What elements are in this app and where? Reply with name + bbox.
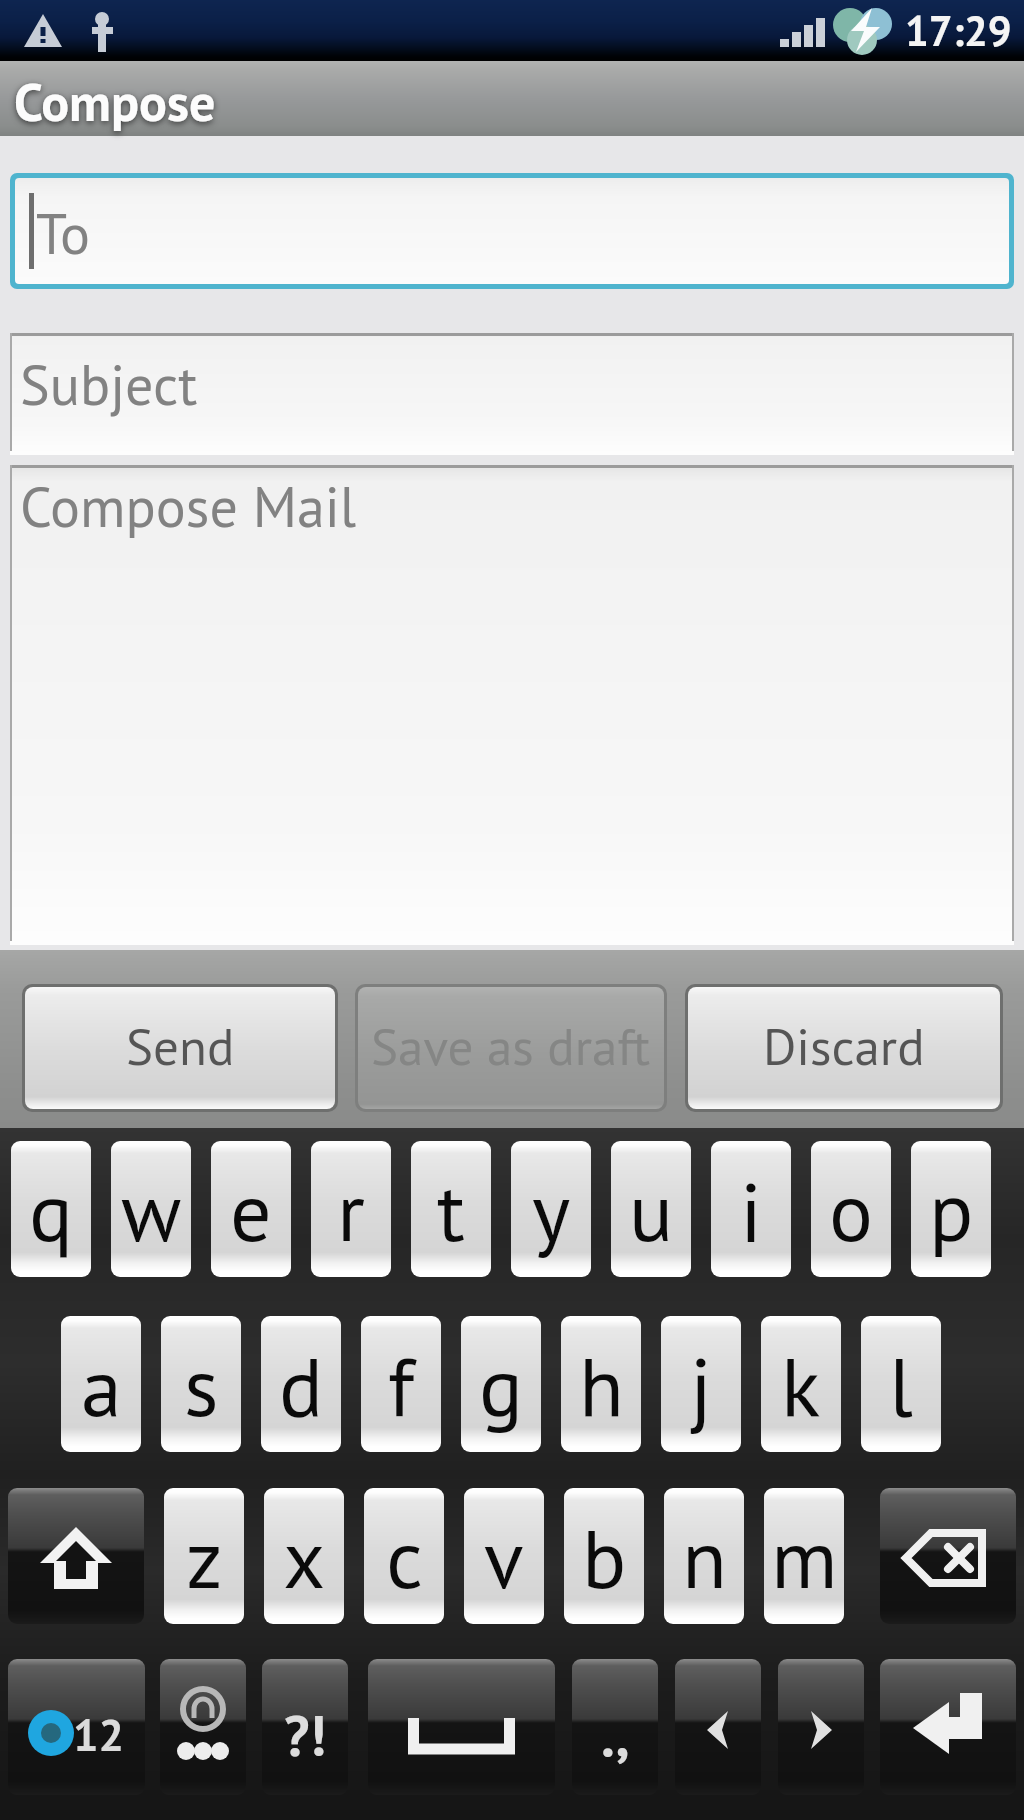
staticText: g <box>479 1333 524 1439</box>
button[interactable]: g <box>461 1316 541 1452</box>
button[interactable]: y <box>511 1141 591 1277</box>
staticText: f <box>388 1333 415 1439</box>
button[interactable]: Compose <box>0 61 1024 136</box>
button[interactable]: b <box>564 1488 644 1624</box>
staticText: Discard <box>763 1013 925 1079</box>
button[interactable]: i <box>711 1141 791 1277</box>
staticText: d <box>279 1333 324 1439</box>
staticText: Subject <box>20 348 198 420</box>
staticText: k <box>781 1333 821 1439</box>
button[interactable]: h <box>561 1316 641 1452</box>
button[interactable]: Enter <box>880 1659 1016 1795</box>
button[interactable]: Move cursor left <box>675 1659 761 1795</box>
button[interactable]: s <box>161 1316 241 1452</box>
button[interactable]: e <box>211 1141 291 1277</box>
button[interactable]: w <box>111 1141 191 1277</box>
staticText: o <box>829 1158 873 1264</box>
staticText: n <box>682 1505 727 1611</box>
staticText: u <box>629 1158 674 1264</box>
button[interactable]: Discard <box>688 987 1000 1109</box>
staticText: s <box>184 1333 219 1439</box>
button[interactable]: Change input method <box>160 1659 246 1795</box>
staticText: Compose Mail <box>20 470 357 542</box>
button[interactable]: z <box>164 1488 244 1624</box>
button[interactable]: f <box>361 1316 441 1452</box>
button[interactable]: Send <box>25 987 335 1109</box>
button[interactable]: Symbols <box>262 1659 348 1795</box>
staticText: a <box>81 1333 122 1439</box>
staticText: t <box>437 1158 465 1264</box>
staticText: ?! <box>284 1699 326 1771</box>
staticText: q <box>29 1158 74 1264</box>
staticText: Save as draft <box>371 1013 651 1079</box>
button[interactable]: n <box>664 1488 744 1624</box>
staticText: Compose <box>14 68 216 135</box>
staticText: e <box>230 1158 272 1264</box>
button[interactable]: To <box>10 173 1014 289</box>
button[interactable]: Subject <box>10 333 1014 455</box>
staticText: p <box>929 1158 974 1264</box>
staticText: To <box>36 197 90 269</box>
staticText: Send <box>126 1013 235 1079</box>
button[interactable]: p <box>911 1141 991 1277</box>
staticText: 12 <box>73 1705 125 1763</box>
button[interactable]: Period and comma <box>572 1659 658 1795</box>
button[interactable]: Save as draft <box>358 987 664 1109</box>
staticText: l <box>889 1333 913 1439</box>
staticText: i <box>740 1158 762 1264</box>
button[interactable]: d <box>261 1316 341 1452</box>
staticText: w <box>121 1158 182 1264</box>
staticText: z <box>186 1505 223 1611</box>
staticText: v <box>484 1505 524 1611</box>
button[interactable]: l <box>861 1316 941 1452</box>
staticText: ., <box>601 1699 630 1771</box>
staticText: j <box>690 1333 712 1439</box>
button[interactable]: c <box>364 1488 444 1624</box>
button[interactable]: q <box>11 1141 91 1277</box>
button[interactable]: Backspace <box>880 1488 1016 1624</box>
button[interactable]: Move cursor right <box>778 1659 864 1795</box>
button[interactable]: m <box>764 1488 844 1624</box>
button[interactable]: t <box>411 1141 491 1277</box>
button[interactable]: k <box>761 1316 841 1452</box>
button[interactable]: r <box>311 1141 391 1277</box>
button[interactable]: x <box>264 1488 344 1624</box>
button[interactable]: Space <box>368 1659 555 1795</box>
staticText: c <box>386 1505 423 1611</box>
staticText: 17:29 <box>905 3 1012 57</box>
staticText: x <box>283 1505 326 1611</box>
button[interactable]: j <box>661 1316 741 1452</box>
staticText: m <box>771 1505 838 1611</box>
button[interactable]: Numbers and symbols <box>8 1659 145 1795</box>
staticText: b <box>582 1505 627 1611</box>
button[interactable]: Compose Mail <box>10 465 1014 945</box>
staticText: h <box>579 1333 624 1439</box>
button[interactable]: v <box>464 1488 544 1624</box>
button[interactable]: a <box>61 1316 141 1452</box>
staticText: y <box>532 1158 571 1264</box>
staticText: r <box>337 1158 365 1264</box>
button[interactable]: Shift <box>8 1488 144 1624</box>
button[interactable]: o <box>811 1141 891 1277</box>
button[interactable]: u <box>611 1141 691 1277</box>
